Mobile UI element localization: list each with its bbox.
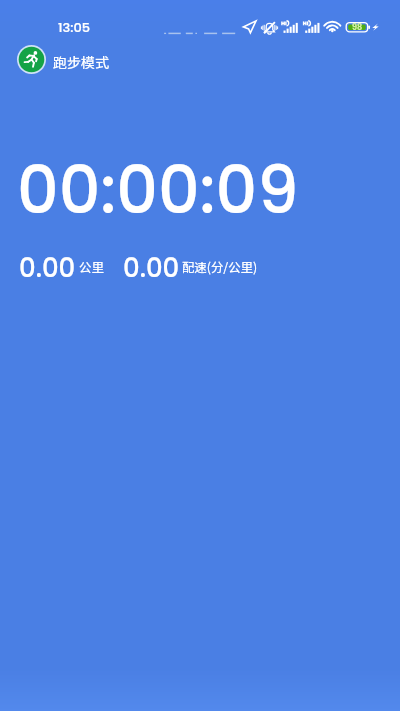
staticText: 跑步模式 xyxy=(53,52,109,72)
staticText: 98 xyxy=(352,22,363,33)
staticText: 公里 xyxy=(79,258,104,276)
button[interactable]: 跑步模式图标 xyxy=(0,45,123,74)
staticText: 0.00 xyxy=(123,250,180,282)
staticText: 13:05 xyxy=(58,18,91,36)
staticText: 0.00 xyxy=(19,250,76,282)
other: 跑步模式图标 xyxy=(17,45,46,74)
staticText: 00:00:09 xyxy=(17,145,299,236)
staticText: 配速(分/公里) xyxy=(182,258,258,276)
